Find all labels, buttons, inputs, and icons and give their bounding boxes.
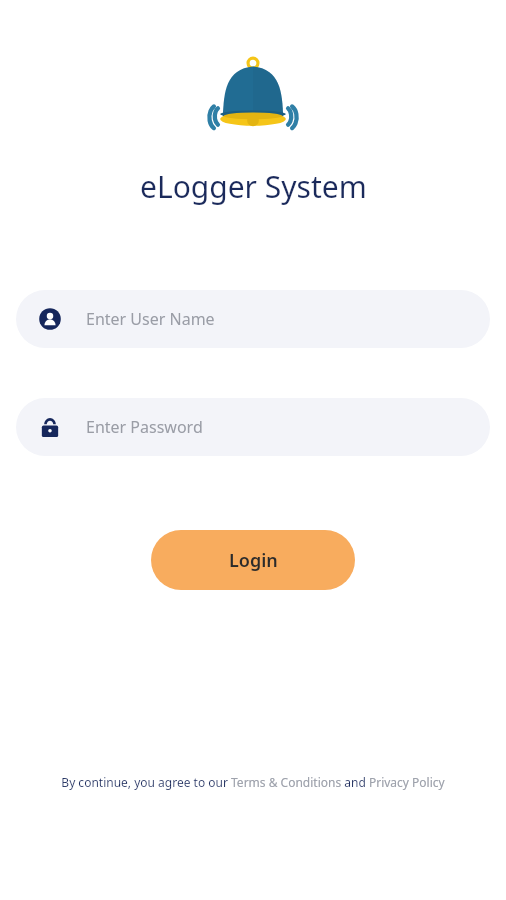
button[interactable]: By continue, you agree to our Terms & Co… <box>61 774 445 790</box>
staticText: Login <box>229 548 278 573</box>
button[interactable]: Login <box>151 530 355 590</box>
button[interactable]: Password <box>16 398 490 456</box>
other: User name <box>38 307 62 331</box>
staticText: Enter Password <box>86 416 203 438</box>
button[interactable]: User name <box>16 290 490 348</box>
staticText: By continue, you agree to our Terms & Co… <box>61 774 445 790</box>
other: eLogger bell logo <box>208 58 298 136</box>
other: Password <box>38 415 62 439</box>
staticText: Enter User Name <box>86 308 215 330</box>
staticText: eLogger System <box>140 166 367 207</box>
